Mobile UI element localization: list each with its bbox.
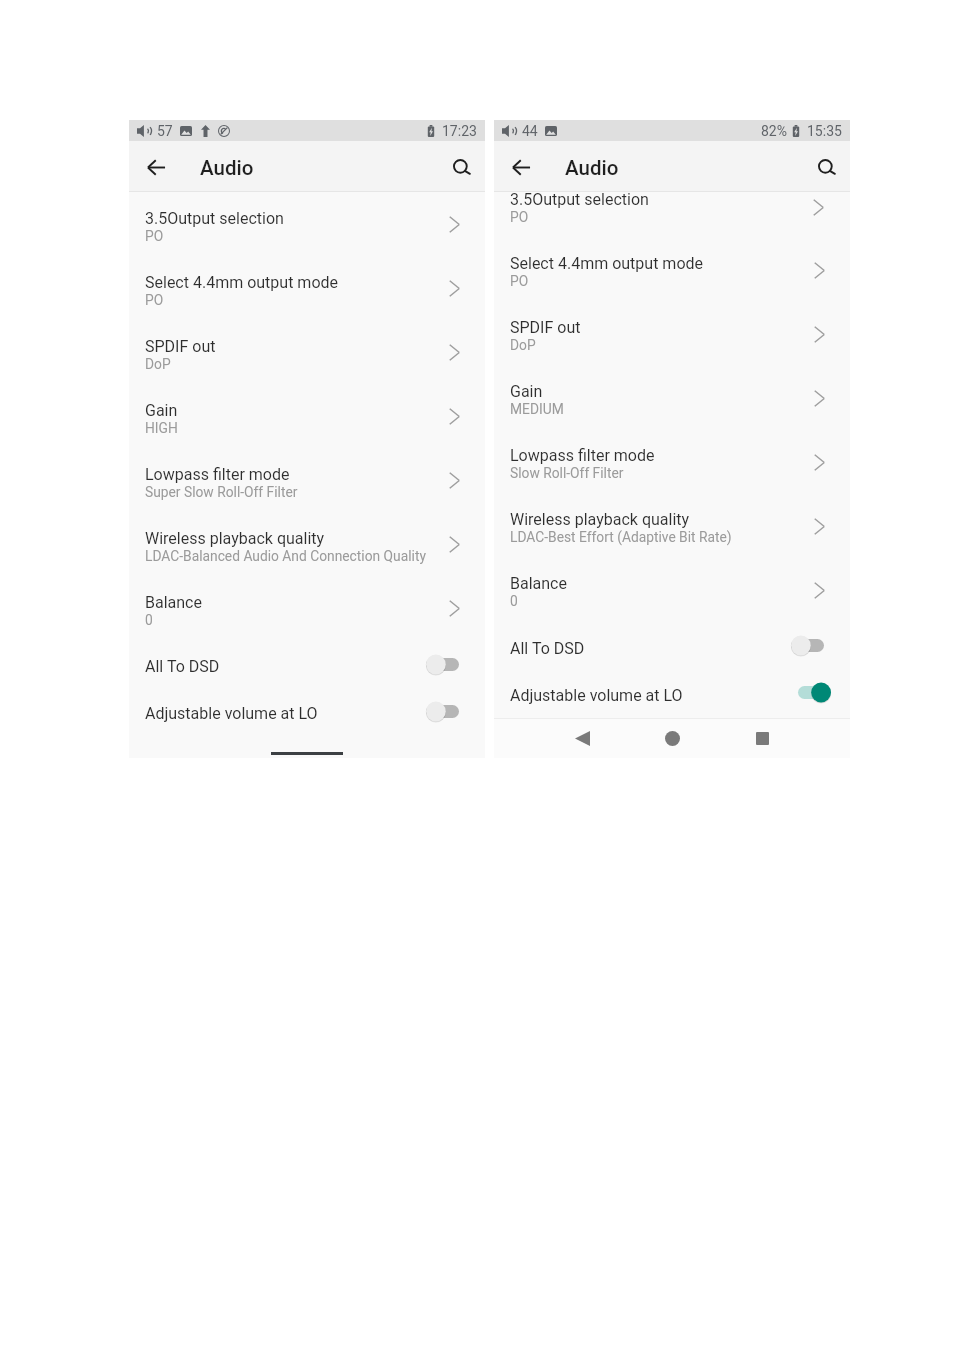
staticText: PO: [510, 209, 529, 225]
staticText: Audio: [200, 156, 254, 180]
button[interactable]: Back: [558, 719, 606, 758]
staticText: 3.5Output selection: [145, 209, 284, 228]
button[interactable]: Off: [426, 701, 459, 722]
staticText: Slow Roll-Off Filter: [510, 465, 624, 481]
staticText: MEDIUM: [510, 401, 564, 417]
button[interactable]: Home: [648, 719, 696, 758]
staticText: LDAC-Balanced Audio And Connection Quali…: [145, 548, 426, 564]
staticText: Wireless playback quality: [510, 510, 690, 529]
staticText: DoP: [510, 337, 536, 353]
button[interactable]: On: [798, 682, 831, 703]
staticText: Gain: [145, 401, 178, 420]
button[interactable]: Recents: [738, 719, 786, 758]
staticText: Audio: [565, 156, 619, 180]
button[interactable]: Balance: [129, 576, 485, 640]
staticText: Balance: [510, 574, 567, 593]
button[interactable]: Balance: [494, 559, 850, 623]
button[interactable]: Search: [445, 142, 479, 192]
staticText: DoP: [145, 356, 171, 372]
button[interactable]: Off: [791, 635, 824, 656]
staticText: Adjustable volume at LO: [510, 686, 683, 705]
button[interactable]: 3.5Output selection: [129, 192, 485, 256]
staticText: Adjustable volume at LO: [145, 704, 318, 723]
button[interactable]: Gain: [129, 384, 485, 448]
staticText: 0: [145, 612, 153, 628]
staticText: All To DSD: [510, 639, 585, 658]
staticText: 44: [522, 123, 538, 139]
button[interactable]: Wireless playback quality: [494, 495, 850, 559]
button[interactable]: Back: [139, 142, 173, 192]
staticText: 57: [157, 123, 173, 139]
button[interactable]: Off: [426, 654, 459, 675]
staticText: 17:23: [442, 123, 477, 139]
staticText: Balance: [145, 593, 202, 612]
staticText: Super Slow Roll-Off Filter: [145, 484, 298, 500]
staticText: Gain: [510, 382, 543, 401]
button[interactable]: SPDIF out: [129, 320, 485, 384]
button[interactable]: Search: [810, 142, 844, 192]
button[interactable]: Back: [504, 142, 538, 192]
staticText: Select 4.4mm output mode: [145, 273, 339, 292]
button[interactable]: 3.5Output selection: [494, 192, 850, 239]
button[interactable]: Select 4.4mm output mode: [129, 256, 485, 320]
button[interactable]: Select 4.4mm output mode: [494, 239, 850, 303]
button[interactable]: Wireless playback quality: [129, 512, 485, 576]
button[interactable]: Adjustable volume at LO: [129, 687, 485, 732]
staticText: SPDIF out: [510, 318, 581, 337]
button[interactable]: Adjustable volume at LO: [494, 670, 850, 717]
staticText: HIGH: [145, 420, 178, 436]
staticText: Lowpass filter mode: [145, 465, 290, 484]
button[interactable]: All To DSD: [129, 640, 485, 687]
staticText: PO: [145, 292, 164, 308]
staticText: SPDIF out: [145, 337, 216, 356]
staticText: PO: [510, 273, 529, 289]
staticText: Lowpass filter mode: [510, 446, 655, 465]
staticText: Select 4.4mm output mode: [510, 254, 704, 273]
button[interactable]: Lowpass filter mode: [494, 431, 850, 495]
button[interactable]: Gain: [494, 367, 850, 431]
staticText: 15:35: [807, 123, 842, 139]
staticText: 82%: [761, 123, 787, 139]
staticText: 0: [510, 593, 518, 609]
staticText: 3.5Output selection: [510, 190, 649, 209]
button[interactable]: SPDIF out: [494, 303, 850, 367]
staticText: Wireless playback quality: [145, 529, 325, 548]
staticText: All To DSD: [145, 657, 220, 676]
staticText: LDAC-Best Effort (Adaptive Bit Rate): [510, 529, 732, 545]
staticText: PO: [145, 228, 164, 244]
button[interactable]: Lowpass filter mode: [129, 448, 485, 512]
button[interactable]: All To DSD: [494, 623, 850, 670]
